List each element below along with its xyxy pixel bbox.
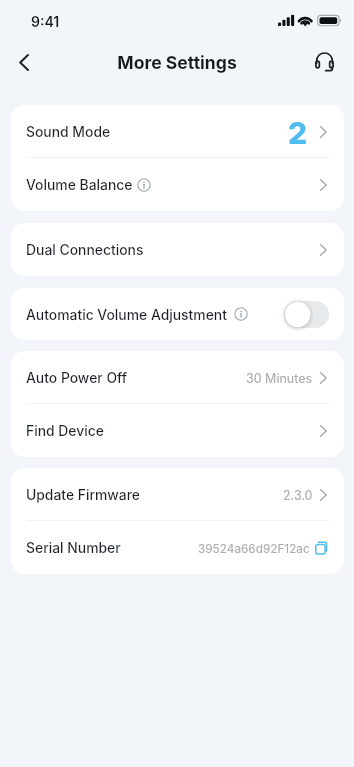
staticText: 2	[288, 115, 308, 151]
staticText: Dual Connections	[26, 242, 144, 259]
button[interactable]: Sound Mode	[11, 105, 344, 158]
staticText: 9:41	[31, 13, 60, 30]
button[interactable]: Support	[304, 42, 344, 82]
staticText: Volume Balance	[26, 177, 133, 194]
staticText: Sound Mode	[26, 124, 111, 141]
button[interactable]: Serial Number	[11, 521, 344, 574]
other: Copy serial number	[315, 541, 330, 555]
staticText: 39524a66d92F12ac	[198, 542, 310, 556]
staticText: 30 Minutes	[246, 371, 313, 386]
staticText: Serial Number	[26, 540, 121, 557]
button[interactable]: Dual Connections	[11, 223, 344, 276]
button[interactable]: Automatic Volume Adjustment	[11, 288, 344, 340]
staticText: Update Firmware	[26, 487, 141, 504]
staticText: Find Device	[26, 423, 104, 440]
staticText: Automatic Volume Adjustment	[26, 307, 227, 324]
button[interactable]: Automatic Volume Adjustment toggle	[284, 300, 330, 329]
button[interactable]: Auto Power Off	[11, 351, 344, 404]
staticText: More Settings	[117, 52, 237, 73]
button[interactable]: Back	[4, 42, 44, 82]
button[interactable]: Update Firmware	[11, 468, 344, 521]
staticText: Auto Power Off	[26, 370, 128, 387]
staticText: 2.3.0	[283, 488, 313, 503]
button[interactable]: Find Device	[11, 404, 344, 457]
button[interactable]: Volume Balance	[11, 158, 344, 211]
